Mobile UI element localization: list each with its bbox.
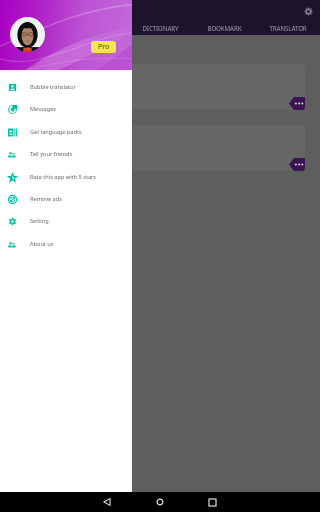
staticText: Setting [30, 217, 49, 225]
button[interactable]: Bubble translator [0, 76, 132, 98]
button[interactable]: Recents [202, 492, 222, 512]
button[interactable]: More options [0, 64, 305, 110]
button[interactable]: Settings [300, 3, 317, 20]
staticText: Pro [98, 42, 110, 52]
button[interactable]: Profile [10, 17, 45, 52]
staticText: Messages [30, 105, 56, 113]
button[interactable]: BOOKMARK [192, 23, 256, 33]
button[interactable]: Back [97, 492, 117, 512]
staticText: Rate this app with 5 stars [30, 173, 97, 181]
staticText: BOOKMARK [207, 24, 242, 32]
staticText: DICTIONARY [142, 24, 179, 32]
staticText: TRANSLATOR [269, 24, 307, 32]
button[interactable]: Remove ads [0, 188, 132, 210]
button[interactable]: Messages [0, 98, 132, 120]
button[interactable]: About us [0, 233, 132, 255]
button[interactable]: More options [289, 158, 305, 171]
button[interactable]: Tell your friends [0, 143, 132, 165]
button[interactable]: DICTIONARY [129, 23, 192, 33]
button[interactable]: TRANSLATOR [256, 23, 320, 33]
staticText: Remove ads [30, 195, 62, 203]
button[interactable]: Rate this app with 5 stars [0, 166, 132, 188]
button[interactable]: More options [289, 97, 305, 110]
button[interactable]: Home [150, 492, 170, 512]
button[interactable]: Pro [91, 41, 116, 53]
button[interactable]: More options [0, 125, 305, 171]
staticText: Bubble translator [30, 83, 76, 91]
staticText: Tell your friends [30, 150, 73, 158]
button[interactable]: Get language packs [0, 121, 132, 143]
button[interactable]: Setting [0, 210, 132, 232]
staticText: Get language packs [30, 128, 82, 136]
staticText: About us [30, 240, 54, 248]
